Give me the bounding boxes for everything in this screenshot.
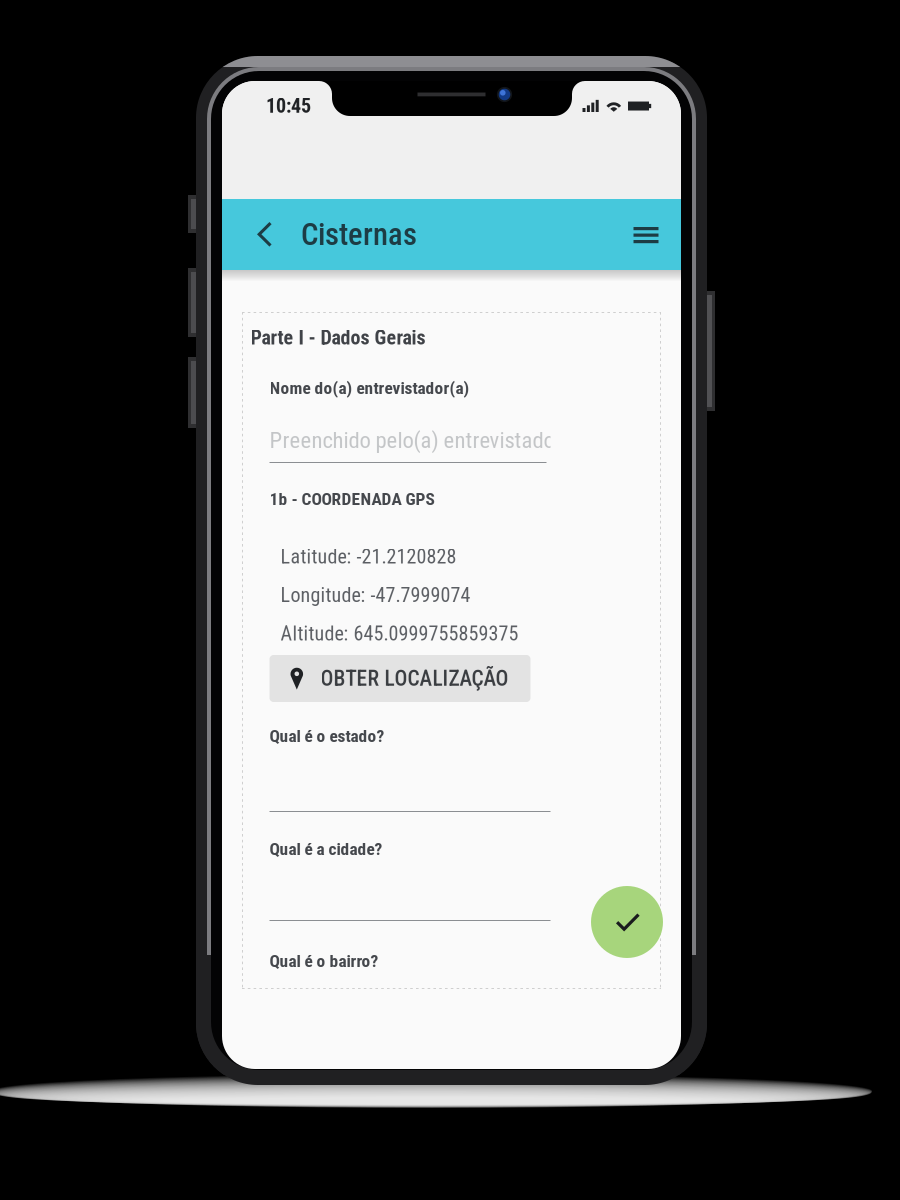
staticText: OBTER LOCALIZAÇÃO [320,666,508,691]
staticText: Latitude: -21.2120828 [280,545,456,568]
staticText: Longitude: -47.7999074 [280,583,470,607]
staticText: Parte I - Dados Gerais [250,326,425,349]
staticText: Cisternas [301,216,417,252]
staticText: Preenchido pelo(a) entrevistado [269,427,554,454]
staticText: Qual é o estado? [269,726,384,746]
button[interactable]: Back [241,199,289,270]
button[interactable]: OBTER LOCALIZAÇÃO [269,655,530,702]
staticText: 10:45 [266,94,311,118]
button[interactable]: Save form [591,886,663,958]
staticText: Nome do(a) entrevistador(a) [269,378,469,398]
staticText: 1b - COORDENADA GPS [269,489,434,509]
staticText: Altitude: 645.0999755859375 [280,622,518,645]
staticText: Qual é a cidade? [269,839,382,859]
button[interactable]: Menu [621,199,671,270]
button[interactable]: Cisternas [289,199,427,270]
staticText: Qual é o bairro? [269,951,378,971]
